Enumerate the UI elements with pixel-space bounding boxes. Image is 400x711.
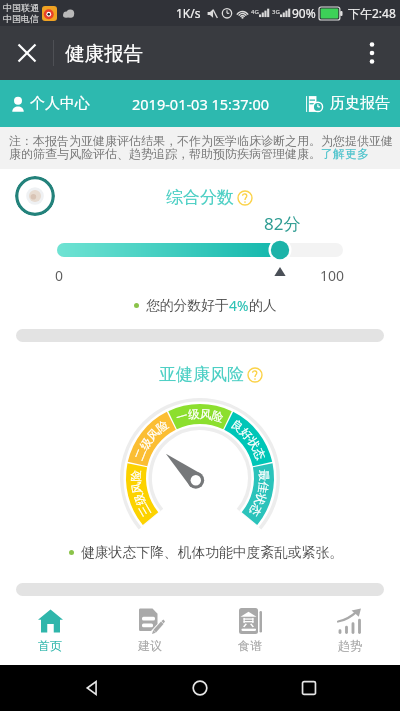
button[interactable]: 食谱: [200, 597, 300, 665]
staticText: 4%: [229, 296, 249, 315]
staticText: 健康状态下降、机体功能中度紊乱或紧张。: [81, 544, 344, 561]
staticText: 建议: [138, 638, 162, 653]
staticText: 首页: [38, 638, 62, 653]
button[interactable]: 趋势: [300, 597, 400, 665]
staticText: 的人: [249, 297, 277, 314]
button[interactable]: Close: [5, 31, 49, 75]
staticText: 趋势: [338, 638, 362, 653]
staticText: 历史报告: [330, 94, 390, 113]
staticText: 健康报告: [65, 41, 143, 66]
button[interactable]: Home: [183, 671, 217, 705]
button[interactable]: More options: [352, 33, 392, 73]
staticText: 4G: [251, 8, 259, 16]
staticText: 90%: [292, 5, 316, 21]
button[interactable]: Recents: [292, 671, 326, 705]
staticText: 100: [320, 266, 345, 285]
staticText: 中国联通: [3, 2, 39, 13]
button[interactable]: Back: [75, 671, 109, 705]
button[interactable]: Profile avatar: [15, 176, 55, 216]
button[interactable]: 历史报告: [306, 94, 390, 113]
staticText: 3G: [272, 8, 280, 16]
staticText: 82分: [264, 212, 301, 235]
staticText: 食谱: [238, 638, 262, 653]
button[interactable]: 注：本报告为亚健康评估结果，不作为医学临床诊断之用。为您提供亚健康的筛查与风险评…: [9, 133, 393, 162]
staticText: 中国电信: [3, 13, 39, 24]
staticText: 下午2:48: [348, 5, 396, 21]
staticText: 亚健康风险: [159, 364, 244, 385]
staticText: 2019-01-03 15:37:00: [132, 94, 269, 114]
staticText: 1K/s: [176, 5, 201, 21]
staticText: 个人中心: [30, 94, 90, 113]
button[interactable]: 个人中心: [10, 94, 90, 113]
staticText: 您的分数好于: [146, 297, 229, 314]
staticText: 综合分数: [166, 187, 234, 208]
button[interactable]: 建议: [100, 597, 200, 665]
button[interactable]: 首页: [0, 597, 100, 665]
staticText: 0: [55, 266, 64, 285]
